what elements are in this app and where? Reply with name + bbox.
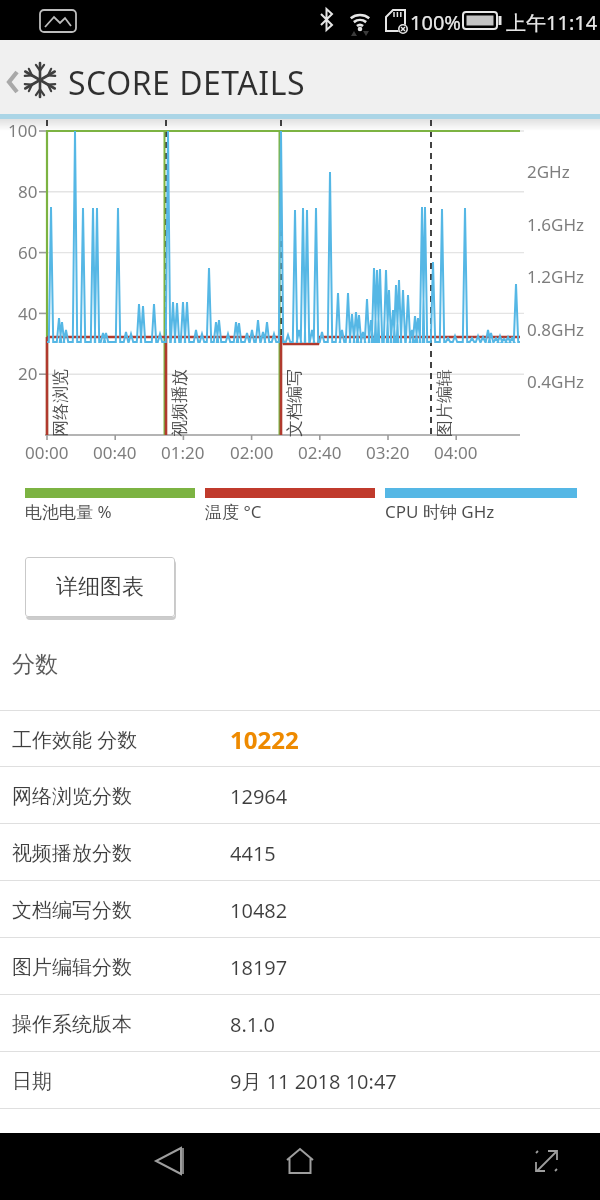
staticText: 工作效能 分数 [12, 726, 138, 753]
staticText: 温度 °C [205, 500, 262, 523]
staticText: 60 [18, 241, 38, 264]
staticText: 2GHz [527, 160, 570, 183]
staticText: 10222 [230, 723, 299, 756]
staticText: 图片编辑 [434, 369, 455, 437]
staticText: CPU 时钟 GHz [385, 500, 495, 523]
staticText: 10482 [230, 897, 288, 924]
staticText: 80 [18, 180, 38, 203]
button[interactable] [138, 1133, 198, 1200]
staticText: SCORE DETAILS [68, 61, 305, 105]
staticText: 1.6GHz [527, 213, 584, 236]
staticText: 图片编辑分数 [12, 955, 132, 980]
staticText: 网络浏览 [50, 369, 71, 437]
staticText: 03:20 [366, 441, 410, 464]
button[interactable]: 详细图表 [25, 557, 175, 617]
staticText: 00:00 [25, 441, 69, 464]
button[interactable]: 视频播放分数 [0, 825, 600, 881]
staticText: 0.8GHz [527, 318, 584, 341]
staticText: 上午11:14 [506, 9, 598, 36]
staticText: 文档编写 [284, 369, 305, 437]
staticText: 视频播放分数 [12, 841, 132, 866]
staticText: 分数 [12, 650, 58, 679]
button[interactable]: 文档编写分数 [0, 882, 600, 938]
staticText: 100% [410, 9, 461, 36]
staticText: 0.4GHz [527, 370, 584, 393]
staticText: 18197 [230, 954, 288, 981]
button[interactable] [270, 1133, 330, 1200]
staticText: 01:20 [161, 441, 205, 464]
staticText: 02:00 [230, 441, 274, 464]
staticText: 02:40 [298, 441, 342, 464]
staticText: 1.2GHz [527, 265, 584, 288]
button[interactable]: 工作效能 分数 [0, 711, 600, 767]
staticText: 00:40 [93, 441, 137, 464]
button[interactable]: 操作系统版本 [0, 996, 600, 1052]
staticText: 文档编写分数 [12, 898, 132, 923]
staticText: 20 [18, 362, 38, 385]
staticText: 日期 [12, 1069, 52, 1094]
staticText: 04:00 [434, 441, 478, 464]
staticText: 100 [8, 119, 38, 142]
staticText: 操作系统版本 [12, 1012, 132, 1037]
staticText: 40 [18, 302, 38, 325]
staticText: 网络浏览分数 [12, 784, 132, 809]
staticText: 9月 11 2018 10:47 [230, 1068, 397, 1095]
staticText: 视频播放 [169, 369, 190, 437]
button[interactable] [516, 1133, 576, 1200]
staticText: 4415 [230, 840, 276, 867]
button[interactable] [0, 40, 64, 115]
staticText: 8.1.0 [230, 1011, 276, 1038]
staticText: 12964 [230, 783, 288, 810]
button[interactable]: 日期 [0, 1053, 600, 1109]
button[interactable]: 图片编辑分数 [0, 939, 600, 995]
staticText: 电池电量 % [25, 500, 112, 523]
button[interactable]: 网络浏览分数 [0, 768, 600, 824]
staticText: 详细图表 [56, 573, 144, 601]
